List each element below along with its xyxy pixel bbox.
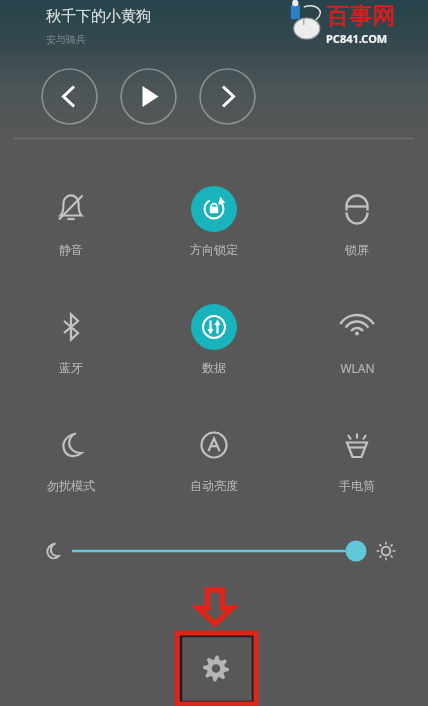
staticText: 蓝牙 <box>59 360 83 375</box>
staticText: 自动亮度 <box>190 478 238 493</box>
staticText: WLAN <box>340 360 375 376</box>
button[interactable]: Next track <box>199 68 256 125</box>
button[interactable]: 锁屏 <box>285 182 428 274</box>
button[interactable]: 方向锁定 <box>142 182 285 274</box>
button[interactable]: Settings <box>176 632 256 705</box>
button[interactable]: Previous track <box>41 68 98 125</box>
staticText: 安与骑兵 <box>46 33 86 46</box>
button[interactable]: 自动亮度 <box>142 418 285 510</box>
staticText: 方向锁定 <box>190 242 238 257</box>
staticText: PC841.COM <box>326 31 388 46</box>
button[interactable]: 勿扰模式 <box>0 418 142 510</box>
staticText: 百事网 <box>326 2 395 31</box>
button[interactable]: 数据 <box>142 300 285 392</box>
button[interactable]: 手电筒 <box>285 418 428 510</box>
staticText: 手电筒 <box>339 478 375 493</box>
staticText: 勿扰模式 <box>47 478 95 493</box>
button[interactable]: WLAN <box>285 300 428 392</box>
staticText: 锁屏 <box>345 242 369 257</box>
staticText: 秋千下的小黄狗 <box>46 7 151 26</box>
button[interactable]: 静音 <box>0 182 142 274</box>
button[interactable] <box>0 531 428 571</box>
staticText: 静音 <box>59 242 83 257</box>
staticText: 数据 <box>202 360 226 375</box>
button[interactable]: 蓝牙 <box>0 300 142 392</box>
button[interactable]: Play <box>120 68 177 125</box>
